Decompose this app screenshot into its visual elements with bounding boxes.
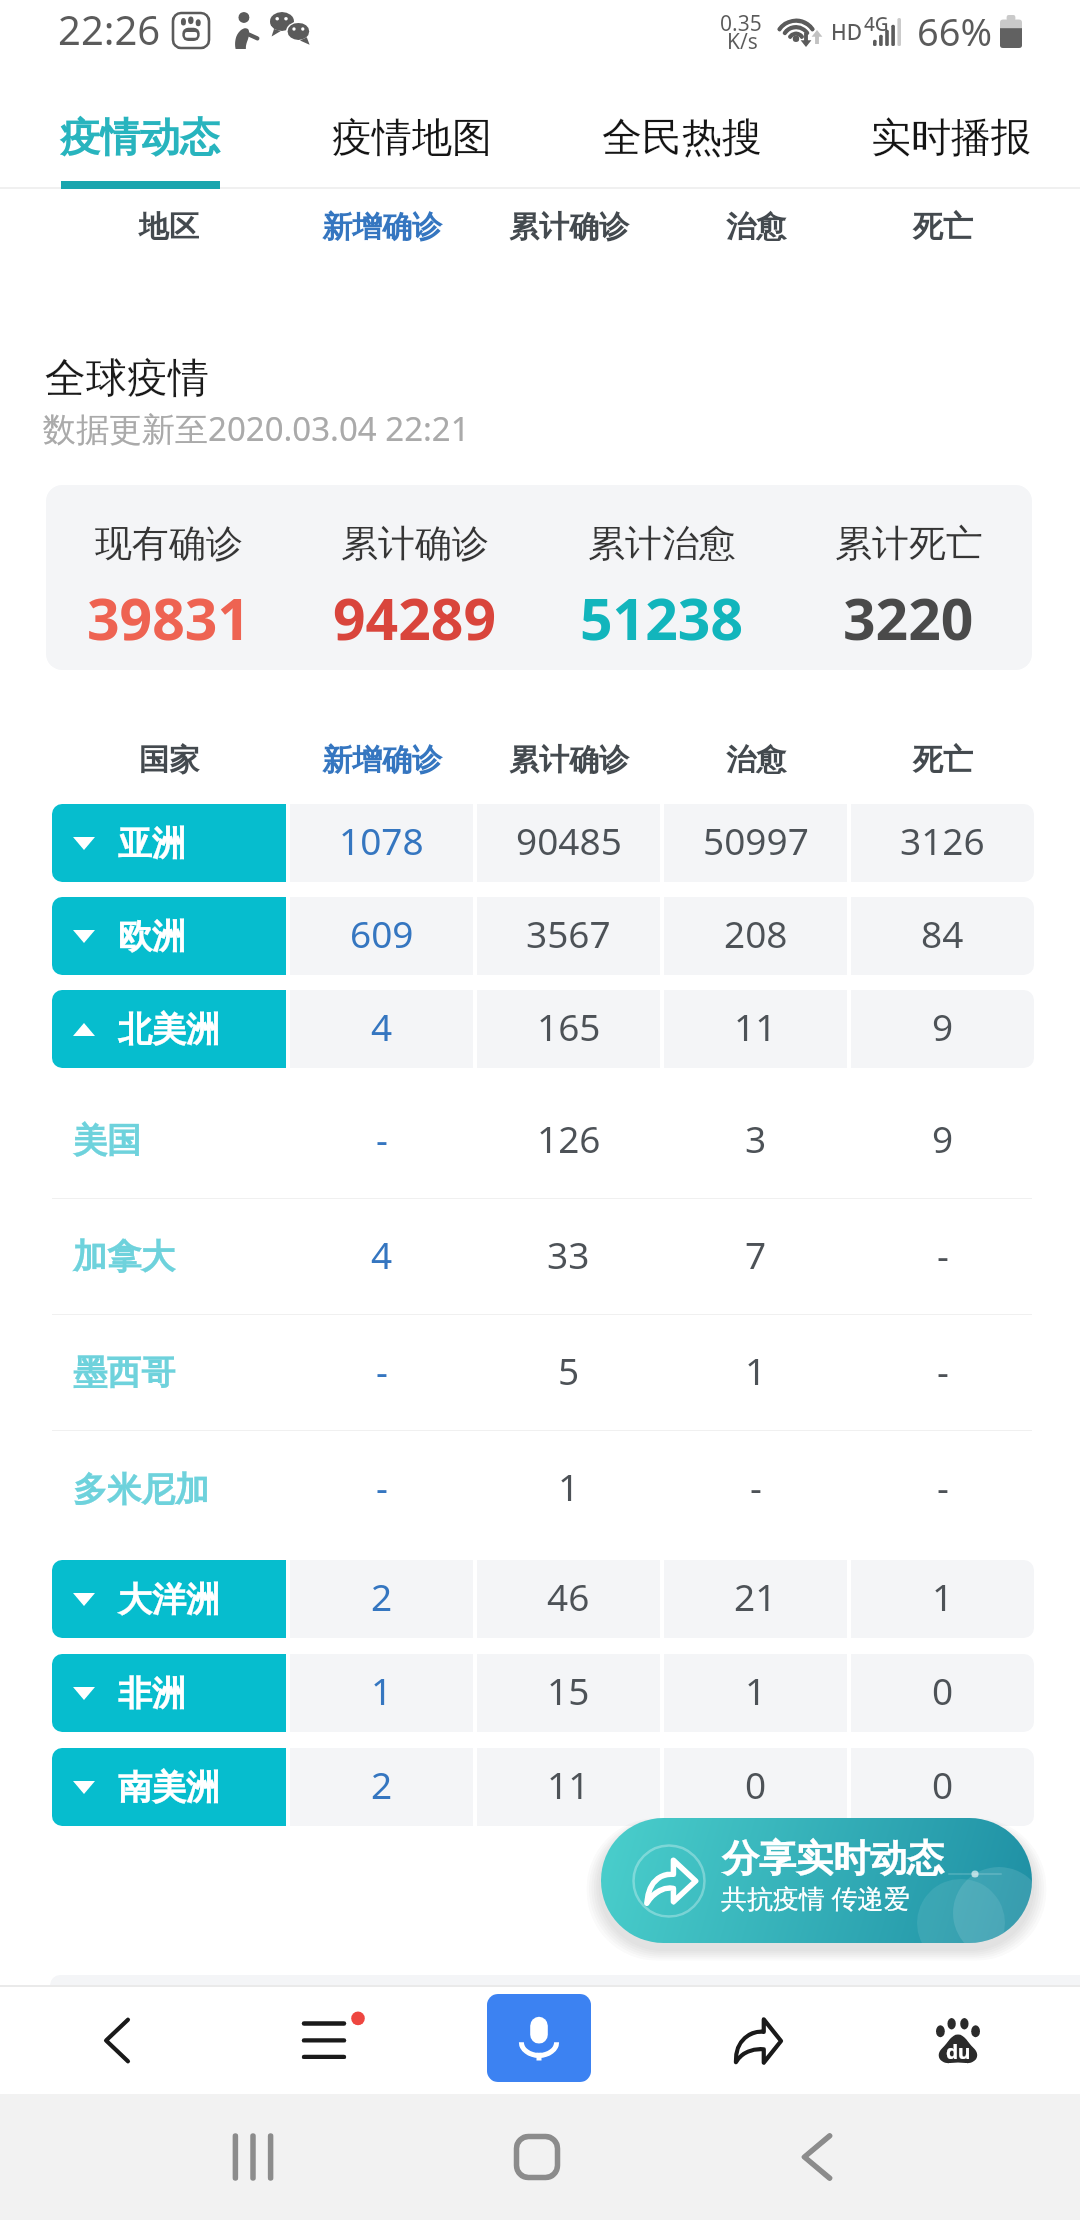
staticText: 39831 xyxy=(87,579,251,657)
staticText: 多米尼加 xyxy=(73,1468,209,1511)
staticText: 数据更新至2020.03.04 22:21 xyxy=(43,406,470,451)
staticText: 新增确诊 xyxy=(322,208,442,246)
staticText: - xyxy=(376,1345,388,1395)
staticText: 1 xyxy=(745,1665,767,1715)
staticText: 欧洲 xyxy=(118,915,186,958)
staticText: 美国 xyxy=(73,1119,141,1162)
staticText: 3 xyxy=(745,1113,767,1163)
staticText: du xyxy=(946,2039,971,2065)
staticText: 51238 xyxy=(580,579,744,657)
staticText: 治愈 xyxy=(726,208,786,246)
staticText: 0 xyxy=(932,1665,954,1715)
staticText: 共抗疫情 传递爱 xyxy=(721,1880,910,1916)
staticText: 4G xyxy=(864,11,889,37)
staticText: 4 xyxy=(371,1001,393,1051)
staticText: 1 xyxy=(745,1345,767,1395)
staticText: 治愈 xyxy=(726,741,786,779)
staticText: 新增确诊 xyxy=(322,741,442,779)
staticText: 94289 xyxy=(333,579,497,657)
staticText: 126 xyxy=(537,1113,601,1163)
staticText: 15 xyxy=(547,1665,590,1715)
staticText: 亚洲 xyxy=(118,822,186,865)
button[interactable]: Baidu home xyxy=(898,1987,1018,2094)
staticText: - xyxy=(376,1113,388,1163)
button[interactable]: 全民热搜 xyxy=(587,84,777,189)
button[interactable]: 累计治愈 xyxy=(538,485,785,670)
staticText: 0 xyxy=(745,1759,767,1809)
button[interactable]: 南美洲 xyxy=(52,1748,1080,1826)
button[interactable]: 亚洲 xyxy=(52,804,1080,882)
staticText: 21 xyxy=(734,1571,777,1621)
staticText: 实时播报 xyxy=(871,112,1031,162)
staticText: 66% xyxy=(917,5,993,57)
staticText: - xyxy=(750,1461,762,1511)
staticText: 北美洲 xyxy=(118,1008,220,1051)
button[interactable]: Recents xyxy=(193,2094,313,2220)
button[interactable]: 疫情动态 xyxy=(45,84,235,189)
button[interactable]: Home xyxy=(477,2094,597,2220)
staticText: 22:26 xyxy=(58,2,161,56)
button[interactable]: Back xyxy=(757,2094,877,2220)
staticText: 累计死亡 xyxy=(835,520,983,567)
staticText: 1 xyxy=(558,1461,580,1511)
button[interactable]: 非洲 xyxy=(52,1654,1080,1732)
staticText: 9 xyxy=(932,1001,954,1051)
button[interactable]: 北美洲 xyxy=(52,990,1080,1068)
staticText: 2 xyxy=(371,1759,393,1809)
button[interactable]: 欧洲 xyxy=(52,897,1080,975)
staticText: K/s xyxy=(727,27,758,56)
staticText: 11 xyxy=(547,1759,590,1809)
staticText: 0.35 xyxy=(720,9,762,38)
button[interactable]: 加拿大 xyxy=(52,1199,1080,1314)
button[interactable]: 美国 xyxy=(52,1083,1080,1198)
staticText: 208 xyxy=(724,908,788,958)
button[interactable]: Voice search xyxy=(487,1994,591,2082)
button[interactable]: 多米尼加 xyxy=(52,1431,1080,1547)
staticText: 非洲 xyxy=(118,1672,186,1715)
button[interactable]: 累计确诊 xyxy=(292,485,538,670)
button[interactable]: Share xyxy=(698,1987,818,2094)
staticText: - xyxy=(937,1229,949,1279)
staticText: 84 xyxy=(921,908,964,958)
button[interactable]: 累计死亡 xyxy=(785,485,1032,670)
staticText: 1 xyxy=(932,1571,954,1621)
button[interactable]: 墨西哥 xyxy=(52,1315,1080,1430)
staticText: - xyxy=(937,1461,949,1511)
staticText: 大洋洲 xyxy=(118,1578,220,1621)
staticText: 2 xyxy=(371,1571,393,1621)
staticText: - xyxy=(937,1345,949,1395)
button[interactable]: 大洋洲 xyxy=(52,1560,1080,1638)
staticText: 7 xyxy=(745,1229,767,1279)
staticText: 4 xyxy=(371,1229,393,1279)
staticText: 50997 xyxy=(703,815,809,865)
button[interactable]: 现有确诊 xyxy=(46,485,292,670)
button[interactable]: 分享实时动态 共抗疫情 传递爱 xyxy=(601,1818,1032,1943)
staticText: 90485 xyxy=(516,815,622,865)
staticText: 地区 xyxy=(139,208,199,246)
staticText: 分享实时动态 xyxy=(722,1835,944,1882)
staticText: 0 xyxy=(932,1759,954,1809)
staticText: 33 xyxy=(547,1229,590,1279)
staticText: 疫情地图 xyxy=(332,112,492,162)
staticText: 现有确诊 xyxy=(95,520,243,567)
button[interactable]: Back xyxy=(57,1987,177,2094)
button[interactable]: Menu xyxy=(274,1987,394,2094)
staticText: 死亡 xyxy=(913,208,973,246)
staticText: 1078 xyxy=(339,815,424,865)
staticText: 累计治愈 xyxy=(588,520,736,567)
staticText: 3220 xyxy=(843,579,974,657)
staticText: 累计确诊 xyxy=(509,208,629,246)
staticText: 3567 xyxy=(526,908,611,958)
staticText: 609 xyxy=(350,908,414,958)
staticText: 1 xyxy=(371,1665,393,1715)
staticText: 9 xyxy=(932,1113,954,1163)
staticText: 加拿大 xyxy=(73,1235,175,1278)
staticText: 11 xyxy=(734,1001,777,1051)
staticText: 46 xyxy=(547,1571,590,1621)
staticText: 3126 xyxy=(900,815,985,865)
staticText: 国家 xyxy=(139,741,199,779)
button[interactable]: 实时播报 xyxy=(856,84,1046,189)
button[interactable]: 疫情地图 xyxy=(317,84,507,189)
staticText: 165 xyxy=(537,1001,601,1051)
staticText: 累计确诊 xyxy=(341,520,489,567)
